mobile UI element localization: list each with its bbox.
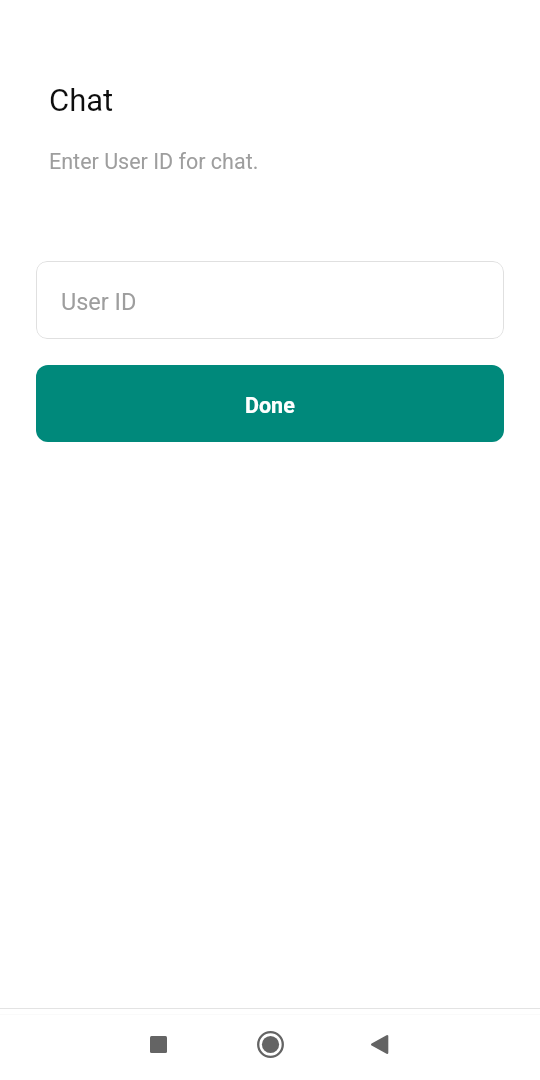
button[interactable]: Back [352,1017,408,1073]
button[interactable]: User ID [36,261,504,339]
staticText: Chat [49,82,114,118]
button[interactable]: Done [36,365,504,442]
staticText: User ID [61,288,137,316]
button[interactable]: Home [242,1017,298,1073]
button[interactable]: Recent apps [130,1017,186,1073]
staticText: Enter User ID for chat. [49,149,259,174]
staticText: Done [245,393,295,418]
